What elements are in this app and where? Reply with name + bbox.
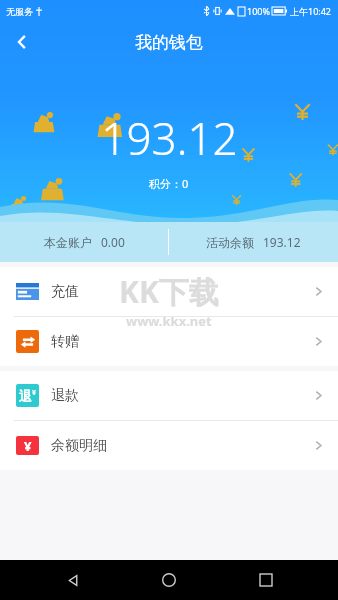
staticText: 本金账户: [44, 235, 92, 250]
button[interactable]: 退: [0, 371, 338, 420]
staticText: 0.00: [101, 234, 125, 250]
staticText: 退: [19, 388, 32, 404]
staticText: www.kkx.net: [126, 312, 212, 330]
staticText: 上午10:42: [290, 5, 332, 17]
button[interactable]: 充值: [0, 267, 338, 316]
staticText: 积分：0: [149, 176, 189, 191]
button[interactable]: Home: [145, 560, 193, 600]
button[interactable]: 转赠: [0, 317, 338, 366]
staticText: 193.12: [101, 108, 238, 168]
staticText: KK下载: [119, 271, 219, 312]
staticText: 转赠: [51, 333, 79, 351]
button[interactable]: Back: [0, 22, 44, 62]
staticText: 无服务: [6, 6, 33, 17]
staticText: 100%: [247, 5, 270, 17]
staticText: 活动余额: [206, 235, 254, 250]
staticText: 退款: [51, 387, 79, 405]
staticText: 余额明细: [51, 437, 107, 455]
staticText: 充值: [51, 283, 79, 301]
button[interactable]: ¥: [0, 421, 338, 470]
button[interactable]: Back: [49, 560, 97, 600]
staticText: 我的钱包: [135, 32, 203, 53]
staticText: 193.12: [263, 234, 301, 250]
staticText: ¥: [32, 388, 37, 398]
staticText: ¥: [24, 437, 32, 455]
button[interactable]: Recent apps: [242, 560, 290, 600]
